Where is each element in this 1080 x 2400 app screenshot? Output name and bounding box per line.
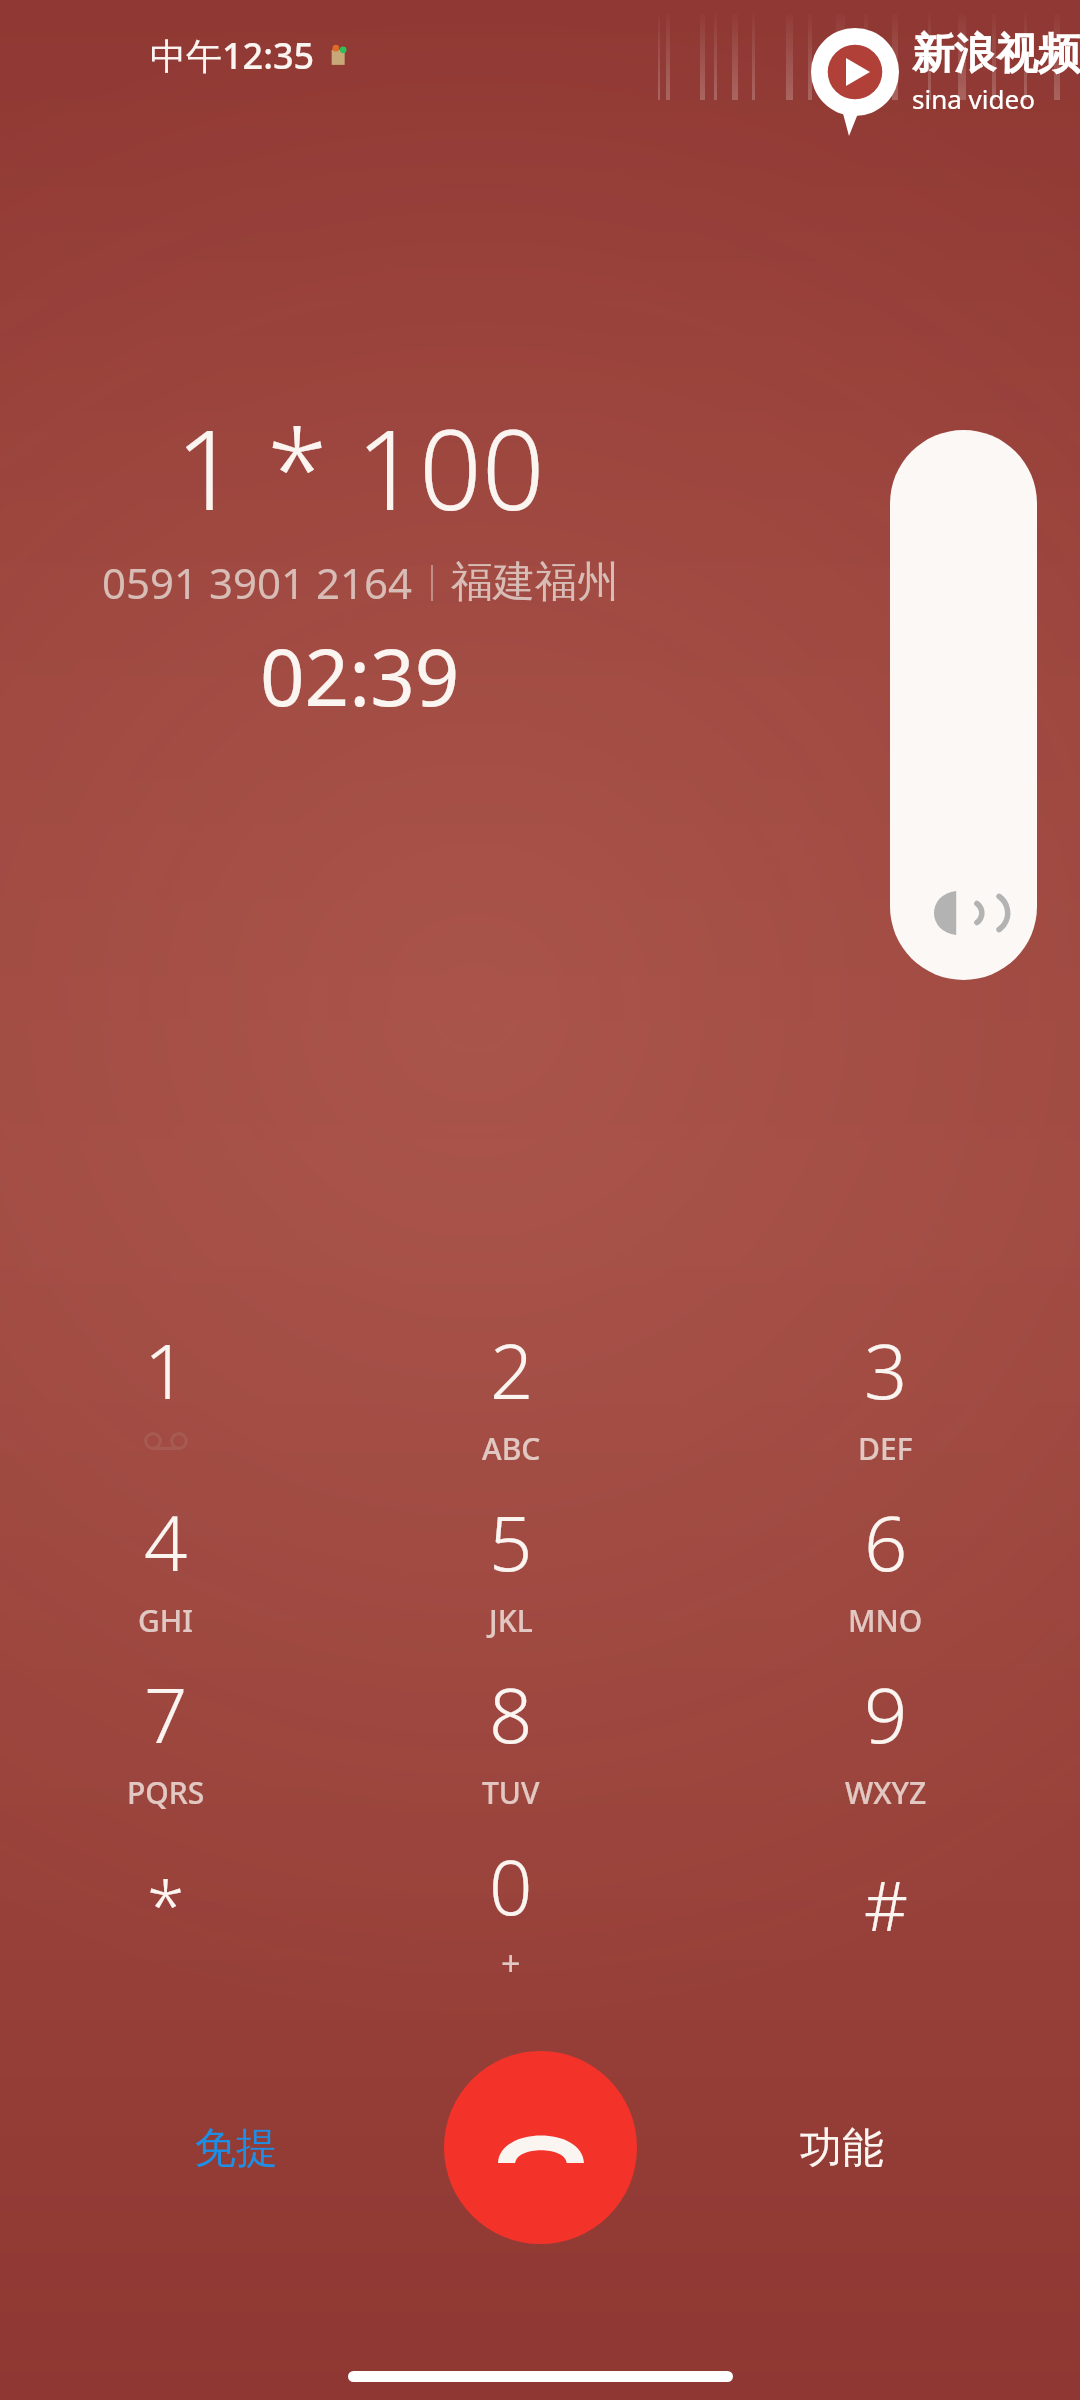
- staticText: 0591 3901 2164: [102, 554, 413, 611]
- staticText: MNO: [848, 1600, 923, 1641]
- button[interactable]: 5: [331, 1490, 691, 1662]
- staticText: #: [864, 1858, 908, 1951]
- staticText: 8: [489, 1662, 533, 1766]
- staticText: 功能: [800, 2122, 884, 2175]
- button[interactable]: 3: [691, 1318, 1080, 1490]
- staticText: GHI: [138, 1600, 193, 1641]
- staticText: 5: [489, 1490, 533, 1594]
- button[interactable]: 2: [331, 1318, 691, 1490]
- staticText: 2: [490, 1318, 534, 1422]
- staticText: 1: [144, 1318, 188, 1422]
- staticText: DEF: [858, 1428, 913, 1469]
- staticText: +: [501, 1940, 521, 1986]
- staticText: WXYZ: [845, 1772, 927, 1813]
- staticText: TUV: [482, 1772, 540, 1813]
- staticText: 0: [489, 1834, 533, 1938]
- staticText: 免提: [194, 2122, 278, 2175]
- button[interactable]: Call volume: [890, 430, 1037, 980]
- staticText: 福建福州: [451, 556, 619, 609]
- button[interactable]: 4: [0, 1490, 331, 1662]
- staticText: 3: [864, 1318, 908, 1422]
- button[interactable]: 8: [331, 1662, 691, 1834]
- staticText: 4: [144, 1490, 188, 1594]
- button[interactable]: 0: [331, 1834, 691, 2020]
- button[interactable]: End call: [444, 2051, 637, 2244]
- button[interactable]: 7: [0, 1662, 331, 1834]
- staticText: JKL: [489, 1600, 533, 1641]
- staticText: *: [147, 1858, 185, 1951]
- button[interactable]: *: [0, 1834, 331, 2020]
- staticText: 1 * 100: [175, 392, 545, 542]
- staticText: 6: [864, 1490, 908, 1594]
- staticText: 新浪视频: [912, 28, 1080, 81]
- staticText: 7: [144, 1662, 188, 1766]
- button[interactable]: 免提: [150, 2108, 322, 2188]
- staticText: 02:39: [260, 623, 460, 729]
- button[interactable]: #: [691, 1834, 1080, 2020]
- staticText: PQRS: [127, 1772, 205, 1813]
- button[interactable]: 1: [0, 1318, 331, 1490]
- staticText: 中午12:35: [150, 31, 315, 80]
- staticText: 9: [864, 1662, 908, 1766]
- staticText: ABC: [482, 1428, 541, 1469]
- button[interactable]: 功能: [756, 2108, 928, 2188]
- staticText: sina video: [912, 81, 1035, 116]
- button[interactable]: 6: [691, 1490, 1080, 1662]
- button[interactable]: 9: [691, 1662, 1080, 1834]
